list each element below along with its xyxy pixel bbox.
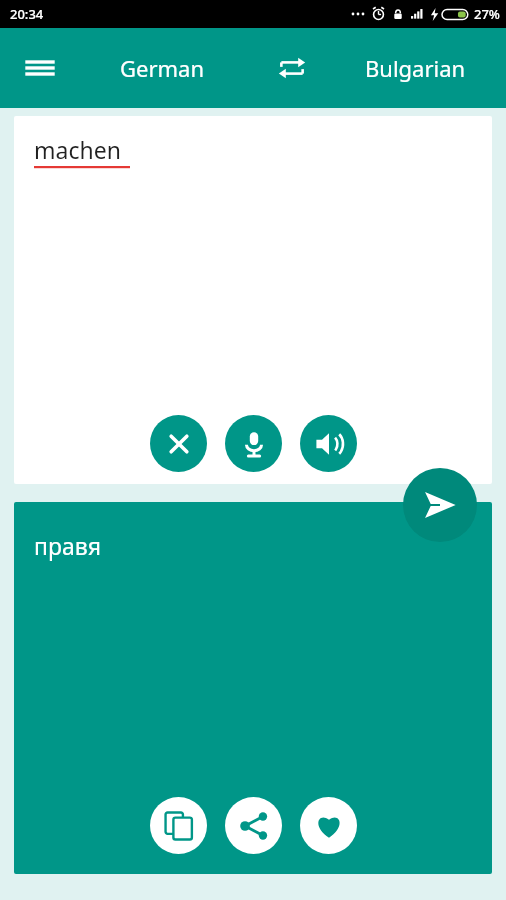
button[interactable]: Bulgarian — [333, 40, 498, 96]
button[interactable]: Voice input — [225, 415, 282, 472]
button[interactable]: Favorite — [300, 797, 357, 854]
button[interactable]: Speak — [300, 415, 357, 472]
button[interactable]: Menu — [14, 42, 66, 94]
staticText: Bulgarian — [365, 53, 466, 83]
button[interactable]: Share — [225, 797, 282, 854]
button[interactable]: Translate — [403, 468, 477, 542]
button[interactable]: Clear — [150, 415, 207, 472]
staticText: 27% — [474, 5, 500, 23]
staticText: German — [120, 53, 205, 83]
staticText: правя — [34, 530, 101, 561]
button[interactable]: Swap languages — [266, 42, 318, 94]
staticText: 20:34 — [10, 5, 44, 23]
button[interactable]: Copy — [150, 797, 207, 854]
staticText: machen — [34, 134, 121, 165]
button[interactable]: German — [90, 40, 235, 96]
